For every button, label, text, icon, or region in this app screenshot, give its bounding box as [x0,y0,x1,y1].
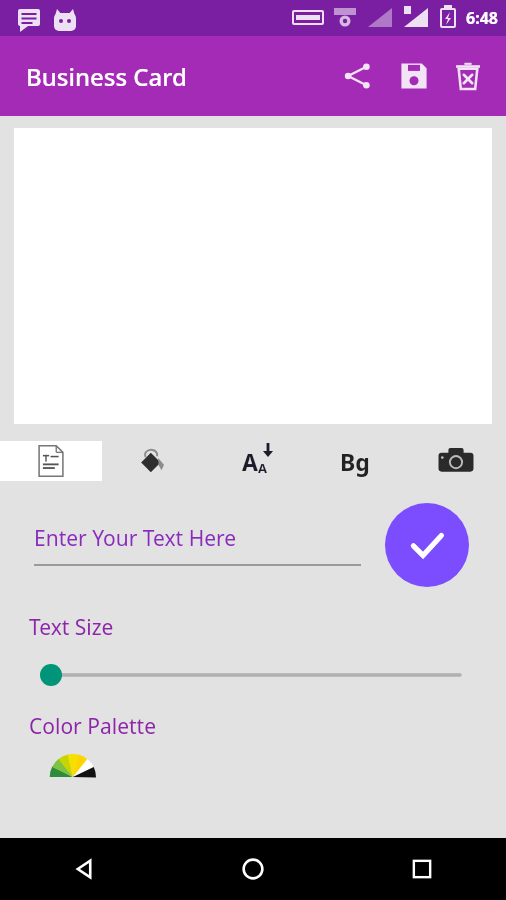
staticText: A [258,459,267,477]
button[interactable]: Font size [203,441,304,481]
button[interactable]: Back [0,838,168,900]
staticText: A [242,446,258,477]
button[interactable]: Camera [405,441,506,481]
staticText: Business Card [26,60,187,93]
staticText: Enter Your Text Here [34,524,237,553]
staticText: Text Size [29,613,114,642]
button[interactable]: Recent apps [337,838,506,900]
button[interactable]: Text color [102,441,203,481]
button[interactable]: Color palette [46,755,110,777]
button[interactable]: Text size slider [0,664,506,686]
button[interactable]: Text tool [0,441,102,481]
button[interactable]: Delete [442,48,494,104]
staticText: 6:48 [466,7,498,29]
button[interactable]: Background [304,441,405,481]
button[interactable]: Save [386,48,442,104]
staticText: Color Palette [29,712,156,741]
button[interactable]: Share [330,48,386,104]
button[interactable]: Enter Your Text Here [34,524,361,566]
staticText: Bg [340,446,370,477]
button[interactable]: Home [168,838,337,900]
button[interactable]: Apply [385,503,469,587]
